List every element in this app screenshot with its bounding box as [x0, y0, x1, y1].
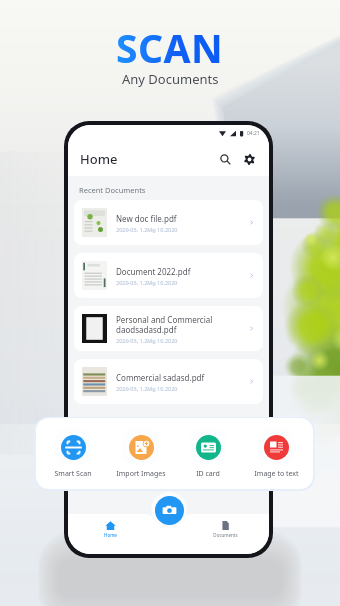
staticText: 04:21 [247, 130, 260, 137]
staticText: Document 2022.pdf [116, 266, 191, 277]
button[interactable]: Smart Scan [40, 429, 106, 479]
staticText: ID card [196, 469, 220, 479]
staticText: New doc file.pdf [116, 213, 177, 224]
button[interactable]: Commercial sadasd.pdf [74, 359, 263, 404]
button[interactable]: Settings [241, 151, 258, 168]
staticText: Image to text [254, 469, 299, 479]
staticText: Commercial sadasd.pdf [116, 372, 205, 383]
staticText: Import Images [116, 469, 166, 479]
button[interactable]: Documents [203, 520, 248, 538]
staticText: Recent Documents [79, 185, 146, 195]
button[interactable]: Image to text [243, 429, 309, 479]
staticText: Documents [213, 532, 238, 538]
button[interactable]: ID card [175, 429, 241, 479]
staticText: Personal and Commercial daodsadasd.pdf [116, 314, 213, 335]
staticText: 2020-05, 1.2Mg 10.2020 [116, 279, 178, 286]
button[interactable]: New doc file.pdf [74, 200, 263, 245]
button[interactable]: Home [88, 520, 133, 538]
staticText: Any Documents [122, 70, 219, 88]
staticText: 2020-05, 1.2Mg 10.2020 [116, 337, 178, 344]
button[interactable]: Personal and Commercial daodsadasd.pdf [74, 306, 263, 351]
staticText: 2020-05, 1.2Mg 10.2020 [116, 385, 178, 392]
staticText: Home [80, 150, 118, 168]
button[interactable]: Import Images [108, 429, 174, 479]
staticText: Smart Scan [54, 469, 92, 479]
staticText: 2020-05, 1.2Mg 10.2020 [116, 226, 178, 233]
staticText: Home [104, 532, 117, 538]
staticText: SCAN [116, 21, 224, 74]
button[interactable]: Scan with camera [155, 496, 184, 525]
button[interactable]: Document 2022.pdf [74, 253, 263, 298]
button[interactable]: Search [217, 151, 234, 168]
